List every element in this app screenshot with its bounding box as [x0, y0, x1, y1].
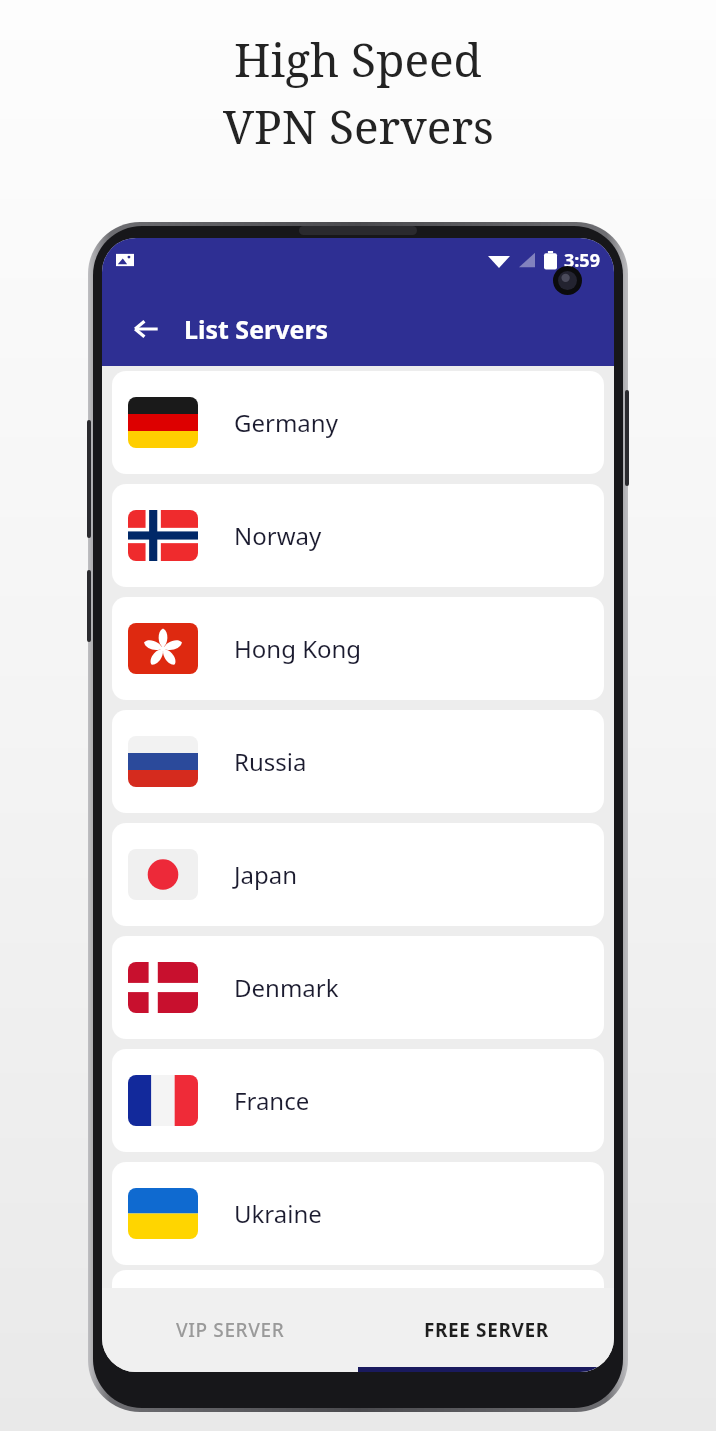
button[interactable]: Germany — [112, 371, 604, 474]
staticText: Germany — [234, 406, 338, 439]
button[interactable]: Hong Kong — [112, 597, 604, 700]
staticText: France — [234, 1084, 310, 1117]
staticText: Russia — [234, 745, 307, 778]
button[interactable]: Denmark — [112, 936, 604, 1039]
button[interactable]: VIP SERVER — [102, 1288, 358, 1372]
staticText: Denmark — [234, 971, 339, 1004]
staticText: Japan — [234, 858, 298, 891]
button[interactable]: Russia — [112, 710, 604, 813]
staticText: 3:59 — [564, 248, 600, 273]
button[interactable]: FREE SERVER — [358, 1288, 614, 1372]
staticText: Norway — [234, 519, 322, 552]
button[interactable]: Japan — [112, 823, 604, 926]
button[interactable]: France — [112, 1049, 604, 1152]
button[interactable]: Back — [124, 307, 168, 351]
staticText: Ukraine — [234, 1197, 322, 1230]
button[interactable]: Norway — [112, 484, 604, 587]
staticText: High Speed — [234, 28, 482, 91]
staticText: VPN Servers — [223, 95, 494, 158]
button[interactable]: Ukraine — [112, 1162, 604, 1265]
staticText: Hong Kong — [234, 632, 362, 665]
staticText: List Servers — [184, 312, 329, 346]
staticText: FREE SERVER — [424, 1317, 549, 1343]
staticText: VIP SERVER — [176, 1317, 285, 1343]
